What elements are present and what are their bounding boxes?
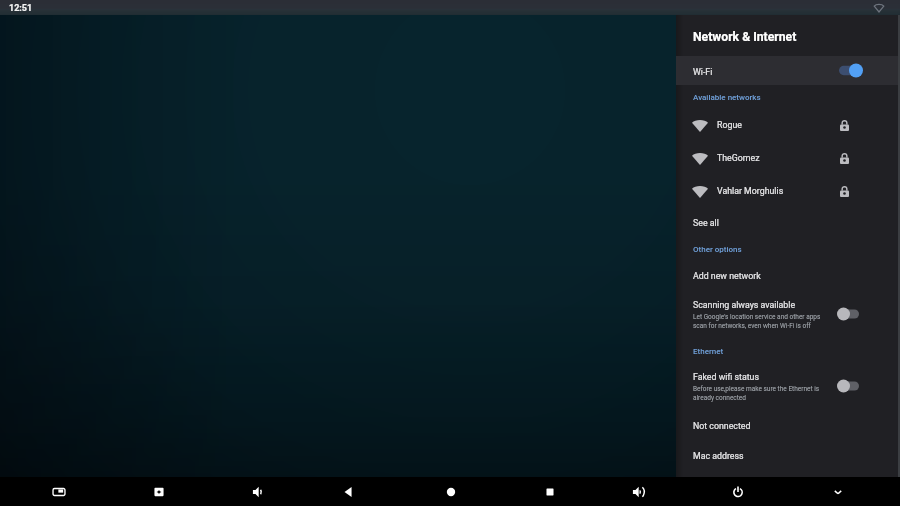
button[interactable]: Not connected [676, 412, 900, 440]
button[interactable]: Hide navigation bar [823, 477, 852, 506]
staticText: Vahlar Morghulis [717, 186, 784, 196]
button[interactable]: See all [676, 209, 900, 237]
button[interactable]: Vahlar Morghulis [676, 175, 900, 207]
staticText: Faked wifi status [693, 372, 759, 382]
button[interactable]: Recent apps [535, 477, 564, 506]
staticText: See all [693, 218, 719, 228]
staticText: Before use,please make sure the Ethernet… [693, 385, 820, 401]
button[interactable]: Mac address [676, 442, 900, 470]
button[interactable]: Power [723, 477, 752, 506]
staticText: 12:51 [9, 3, 33, 14]
staticText: Not connected [693, 421, 751, 431]
button[interactable]: Faked wifi status [676, 364, 900, 406]
button[interactable]: Wi-Fi [676, 56, 900, 85]
button[interactable]: Rogue [676, 109, 900, 141]
button[interactable]: Home [436, 477, 465, 506]
button[interactable]: Volume down [244, 477, 273, 506]
button[interactable]: Picture in picture [44, 477, 73, 506]
staticText: Add new network [693, 271, 761, 281]
staticText: TheGomez [717, 153, 760, 163]
button[interactable]: Back [334, 477, 363, 506]
button[interactable]: Scanning always available [676, 292, 900, 334]
staticText: Rogue [717, 120, 742, 130]
button[interactable]: Volume up [624, 477, 653, 506]
staticText: Ethernet [693, 347, 724, 356]
staticText: Scanning always available [693, 300, 796, 310]
staticText: Let Google's location service and other … [693, 313, 821, 329]
staticText: Mac address [693, 451, 744, 461]
staticText: Wi-Fi [693, 67, 713, 77]
button[interactable]: Wi-Fi status [872, 1, 886, 15]
staticText: Available networks [693, 93, 761, 102]
button[interactable]: Network & Internet [676, 21, 900, 52]
staticText: Network & Internet [693, 30, 797, 44]
button[interactable]: Screenshot [144, 477, 173, 506]
button[interactable]: Add new network [676, 262, 900, 290]
button[interactable]: TheGomez [676, 142, 900, 174]
staticText: Other options [693, 245, 742, 254]
